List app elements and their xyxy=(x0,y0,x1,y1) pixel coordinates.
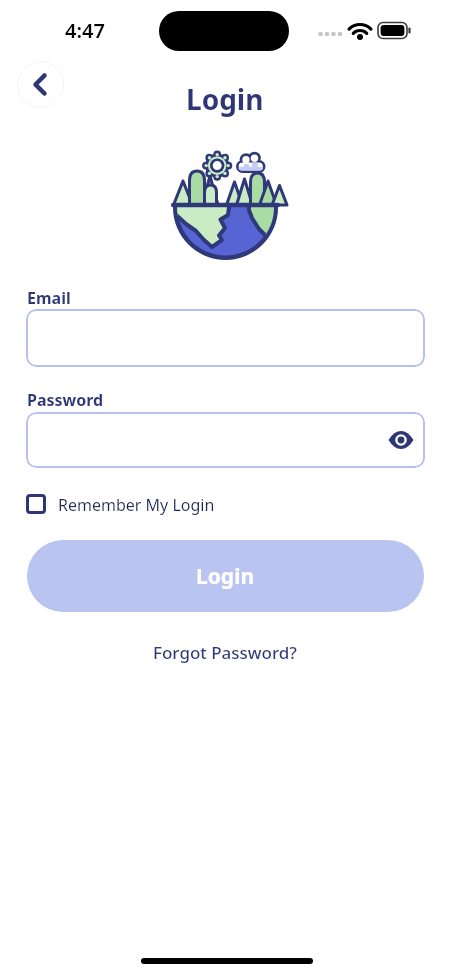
staticText: Remember My Login xyxy=(58,494,215,516)
button[interactable] xyxy=(26,494,46,514)
button[interactable]: Forgot Password? xyxy=(153,641,297,664)
staticText: 4:47 xyxy=(65,17,105,44)
staticText: Password xyxy=(27,389,104,411)
button[interactable] xyxy=(17,61,64,108)
button[interactable] xyxy=(26,309,425,367)
staticText: Login xyxy=(196,562,255,591)
button[interactable] xyxy=(385,424,417,456)
staticText: Login xyxy=(186,80,264,118)
staticText: Forgot Password? xyxy=(153,641,297,664)
button[interactable]: Login xyxy=(27,540,424,612)
staticText: Email xyxy=(27,287,71,309)
button[interactable] xyxy=(26,412,425,468)
